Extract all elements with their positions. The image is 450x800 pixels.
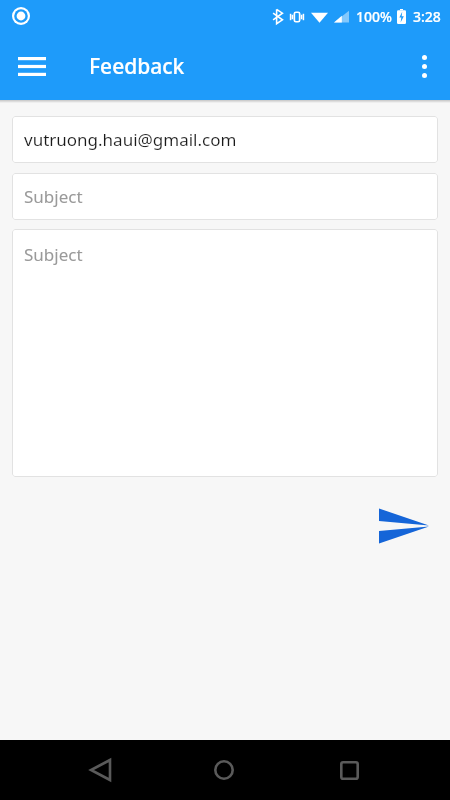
button[interactable]: vutruong.haui@gmail.com [12,116,438,163]
button[interactable]: Back [78,748,122,792]
staticText: 3:28 [413,7,441,26]
button[interactable]: Subject [12,173,438,220]
button[interactable]: More options [402,44,446,88]
button[interactable]: Home [202,748,246,792]
button[interactable]: Recent apps [327,748,371,792]
button[interactable]: Subject [12,229,438,477]
button[interactable]: Open navigation drawer [10,44,54,88]
button[interactable]: Send [375,503,433,549]
staticText: vutruong.haui@gmail.com [24,128,237,151]
staticText: Subject [24,243,83,266]
staticText: 100% [356,7,392,26]
staticText: Subject [24,185,83,208]
staticText: Feedback [89,52,185,81]
